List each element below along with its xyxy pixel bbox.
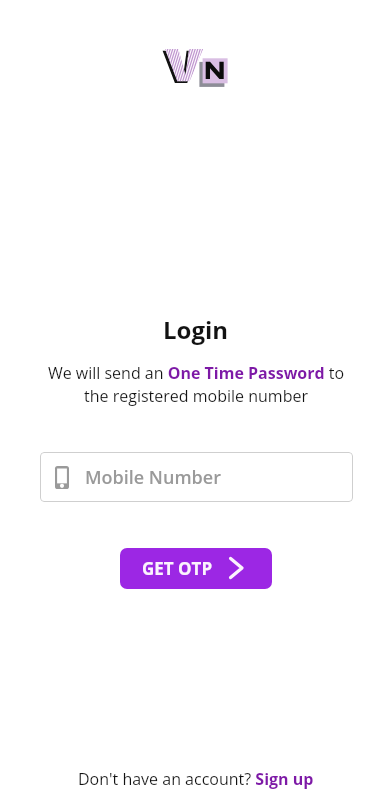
staticText: Login <box>163 313 229 346</box>
staticText: Mobile Number <box>85 465 221 490</box>
staticText: We will send an One Time Password to the… <box>46 362 346 407</box>
button[interactable]: Don't have an account? Sign up <box>78 768 314 790</box>
staticText: Don't have an account? Sign up <box>78 768 314 790</box>
staticText: GET OTP <box>142 557 213 580</box>
button[interactable]: GET OTP <box>120 548 272 589</box>
other: VN logo <box>165 49 233 89</box>
other: Phone <box>55 466 69 489</box>
button[interactable]: Phone <box>40 452 353 502</box>
